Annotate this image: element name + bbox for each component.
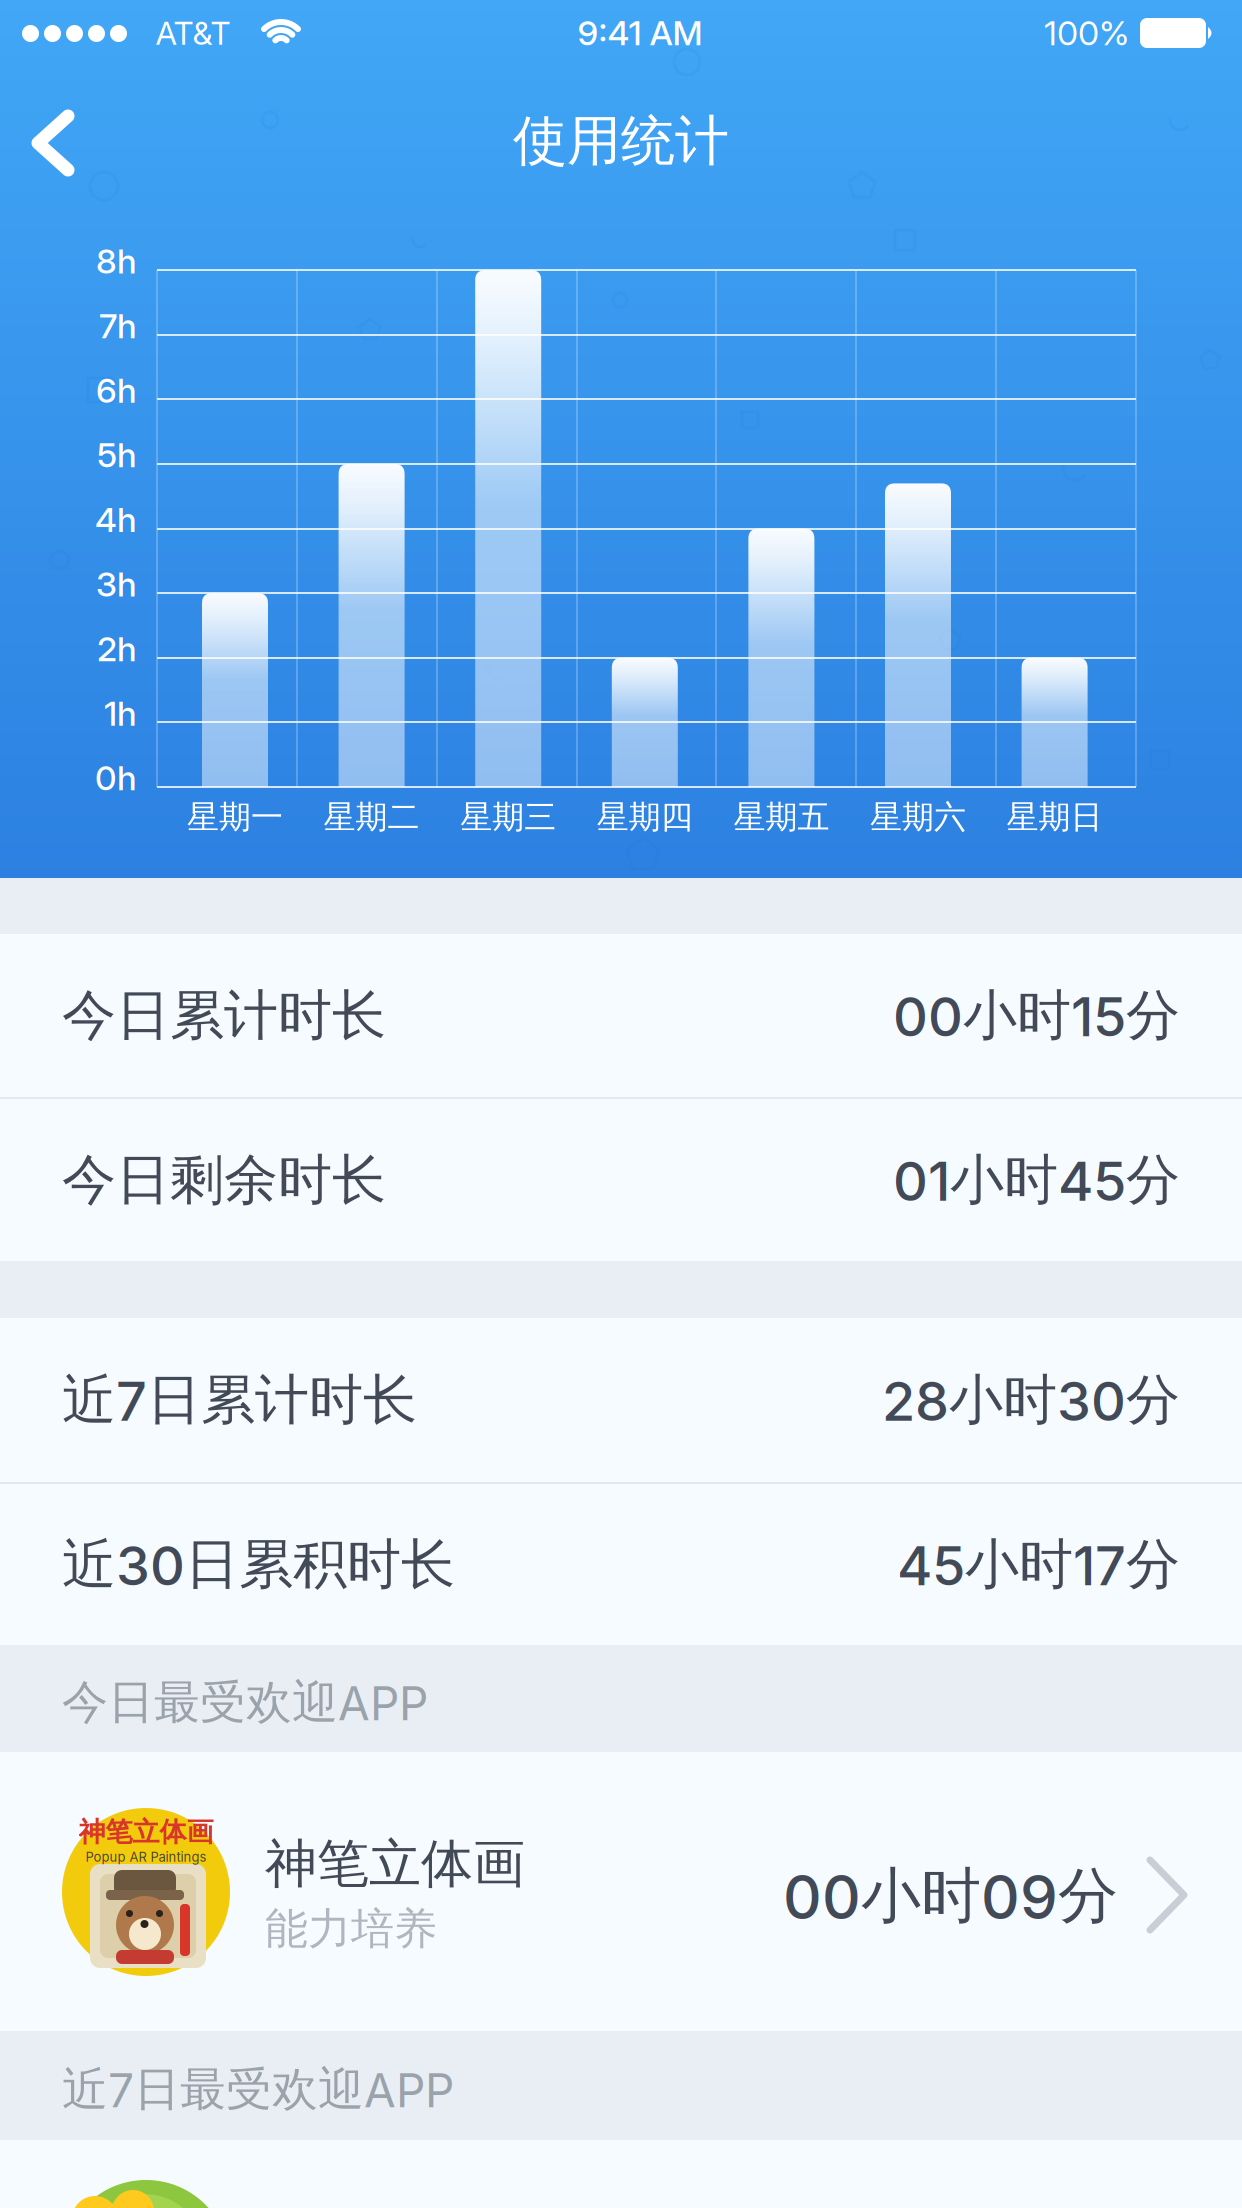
staticText: 2h xyxy=(97,629,137,669)
staticText: 45小时17分 xyxy=(897,1531,1180,1598)
staticText: 星期六 xyxy=(870,797,966,837)
staticText: 神笔立体画 xyxy=(265,1832,525,1896)
staticText: 星期五 xyxy=(733,797,829,837)
staticText: 今日累计时长 xyxy=(62,982,386,1049)
staticText: 神笔立体画 xyxy=(78,1815,213,1849)
staticText: 今日剩余时长 xyxy=(62,1147,386,1213)
button[interactable] xyxy=(0,66,106,188)
staticText: 00小时15分 xyxy=(893,982,1180,1049)
staticText: 6h xyxy=(96,370,137,410)
staticText: 星期一 xyxy=(187,797,283,837)
staticText: 星期三 xyxy=(460,797,556,837)
staticText: 能力培养 xyxy=(265,1903,437,1955)
staticText: 00小时09分 xyxy=(783,1859,1118,1933)
staticText: 1h xyxy=(104,693,137,733)
staticText: 100% xyxy=(1044,13,1129,53)
staticText: 7h xyxy=(99,306,137,346)
staticText: 8h xyxy=(96,241,137,281)
staticText: 4h xyxy=(95,499,137,540)
staticText: 星期二 xyxy=(324,797,420,837)
staticText: 今日最受欢迎APP xyxy=(62,1674,428,1731)
button[interactable]: 神笔立体画 xyxy=(0,1752,1242,2031)
staticText: 01小时45分 xyxy=(893,1147,1180,1213)
staticText: 0h xyxy=(95,758,137,798)
staticText: 3h xyxy=(96,564,137,604)
staticText: 近7日最受欢迎APP xyxy=(62,2061,454,2118)
staticText: 9:41 AM xyxy=(577,13,702,53)
staticText: 近7日累计时长 xyxy=(62,1367,417,1433)
staticText: 星期日 xyxy=(1007,797,1103,837)
staticText: 使用统计 xyxy=(513,108,729,174)
button[interactable] xyxy=(0,2140,1242,2208)
staticText: 28小时30分 xyxy=(882,1367,1180,1433)
staticText: 近30日累积时长 xyxy=(62,1531,455,1598)
staticText: Popup AR Paintings xyxy=(85,1849,206,1865)
staticText: AT&T xyxy=(155,14,230,52)
staticText: 5h xyxy=(97,435,137,475)
staticText: 星期四 xyxy=(597,797,693,837)
